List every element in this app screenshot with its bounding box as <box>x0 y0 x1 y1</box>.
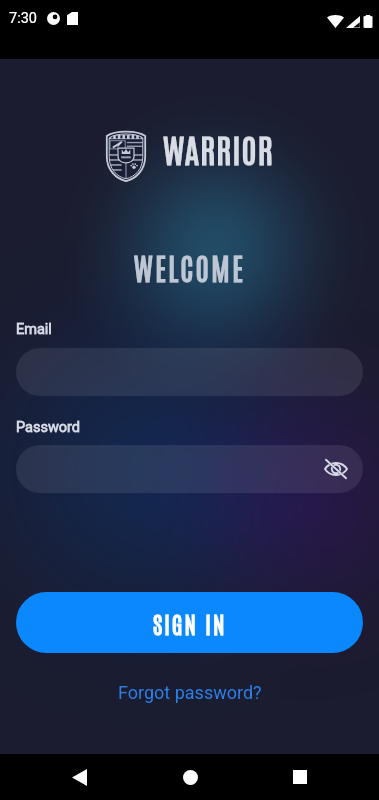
button[interactable]: Forgot password? <box>110 678 270 707</box>
staticText: Password <box>16 419 81 436</box>
button[interactable]: Show password <box>16 445 363 493</box>
button[interactable]: Back <box>55 754 103 800</box>
staticText: 7:30 <box>9 10 37 27</box>
staticText: WELCOME <box>0 249 379 287</box>
button[interactable]: SIGN IN <box>16 592 363 653</box>
staticText: Forgot password? <box>118 682 262 703</box>
staticText: WARRIOR <box>163 127 274 169</box>
button[interactable]: Show password <box>318 451 354 487</box>
button[interactable]: Home <box>166 754 214 800</box>
button[interactable]: Recents <box>276 754 324 800</box>
button[interactable] <box>16 348 363 396</box>
staticText: SIGN IN <box>153 608 227 638</box>
staticText: Email <box>16 321 52 338</box>
